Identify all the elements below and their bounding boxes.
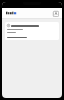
button[interactable]: Account — [52, 10, 59, 17]
button[interactable] — [5, 22, 59, 40]
button[interactable]: App home — [5, 10, 18, 16]
